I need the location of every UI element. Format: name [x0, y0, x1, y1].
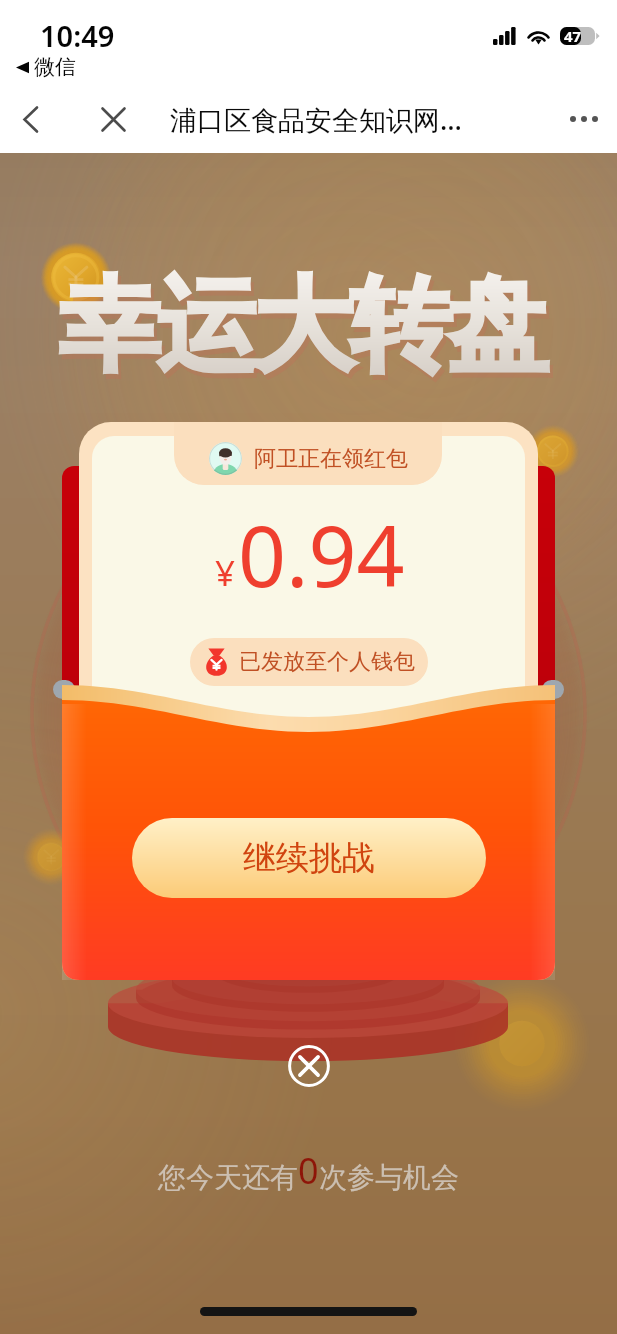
staticText: 微信 [34, 54, 76, 80]
staticText: 继续挑战 [243, 837, 375, 879]
button[interactable]: More options [561, 96, 607, 142]
button[interactable]: 已发放至个人钱包 [190, 638, 428, 686]
staticText: 次参与机会 [319, 1160, 459, 1195]
staticText: 阿卫正在领红包 [254, 445, 408, 473]
button[interactable]: Close page [91, 97, 135, 141]
staticText: 浦口区食品安全知识网… [170, 101, 462, 138]
staticText: 0 [298, 1146, 319, 1195]
button[interactable]: Close [284, 1041, 334, 1091]
button[interactable]: Back [8, 97, 52, 141]
staticText: 幸运大转盘 [61, 263, 546, 390]
staticText: 已发放至个人钱包 [239, 648, 415, 676]
staticText: 您今天还有 [158, 1160, 298, 1195]
staticText: ¥ [215, 549, 236, 597]
staticText: 0.94 [238, 497, 405, 611]
staticText: 幸运大转盘 [64, 268, 549, 395]
staticText: 10:49 [40, 16, 115, 55]
staticText: 47 [564, 26, 582, 46]
button[interactable]: 继续挑战 [132, 818, 486, 898]
